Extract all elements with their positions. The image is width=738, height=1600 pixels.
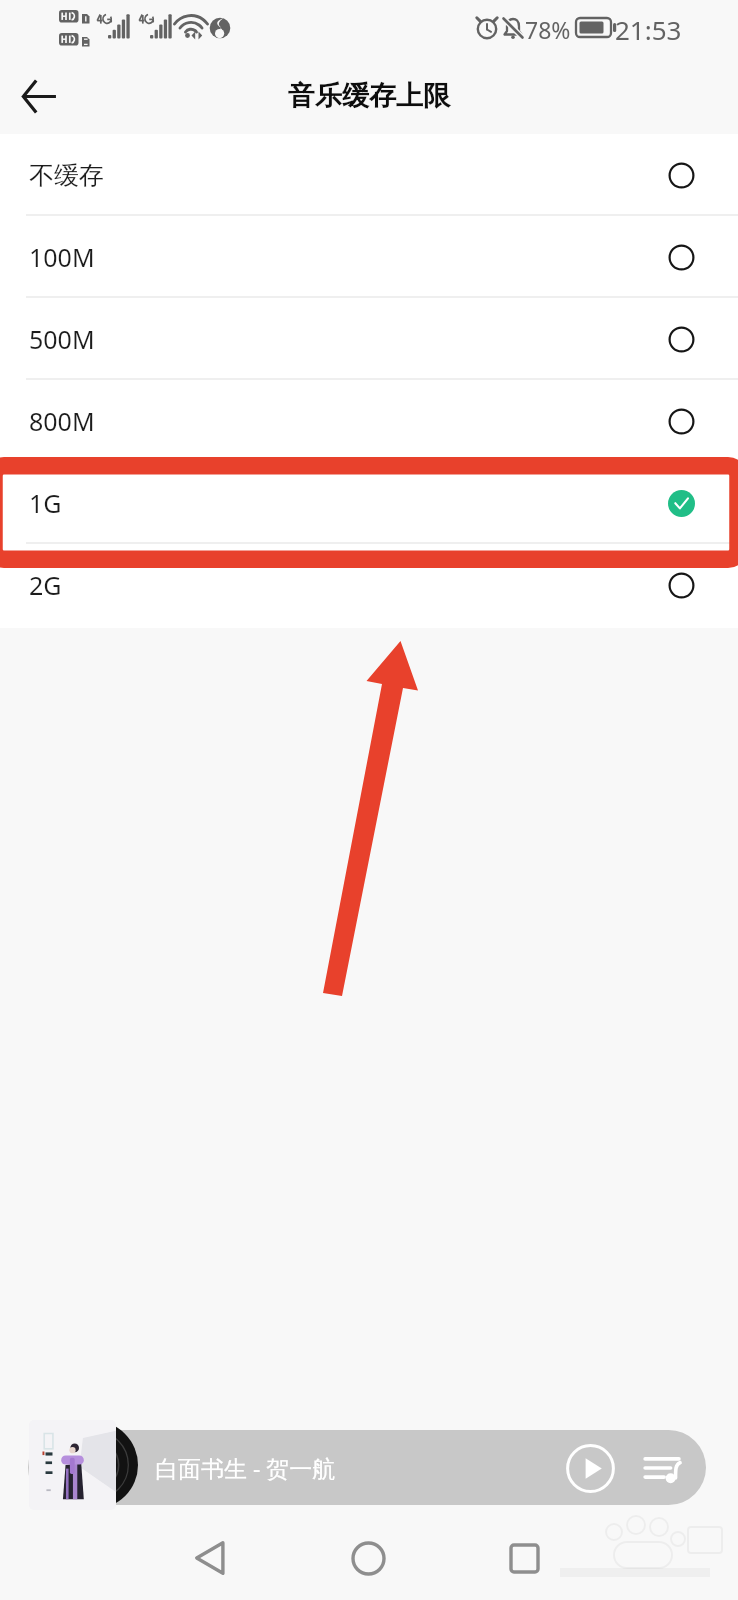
staticText: 500M [29, 322, 95, 356]
button[interactable]: 2G [0, 544, 738, 626]
button[interactable]: Home [336, 1526, 400, 1590]
button[interactable]: 白面书生 - 贺一航 [28, 1430, 706, 1505]
staticText: 白面书生 - 贺一航 [155, 1452, 336, 1483]
staticText: 1G [29, 486, 62, 520]
button[interactable]: Recents [492, 1526, 556, 1590]
button[interactable]: 不缓存 [0, 134, 738, 216]
staticText: 100M [29, 240, 95, 274]
button[interactable]: 800M [0, 380, 738, 462]
button[interactable]: Back [179, 1526, 243, 1590]
staticText: 21:53 [615, 12, 682, 47]
staticText: 音乐缓存上限 [288, 79, 450, 113]
button[interactable]: Playlist [638, 1443, 688, 1493]
button[interactable]: 1G [0, 462, 738, 544]
button[interactable]: 500M [0, 298, 738, 380]
button[interactable]: Back [8, 66, 68, 126]
button[interactable]: 100M [0, 216, 738, 298]
button[interactable]: Play [562, 1440, 618, 1496]
staticText: 2G [29, 568, 62, 602]
staticText: 不缓存 [29, 160, 104, 191]
staticText: 800M [29, 404, 95, 438]
staticText: 78% [525, 14, 571, 45]
